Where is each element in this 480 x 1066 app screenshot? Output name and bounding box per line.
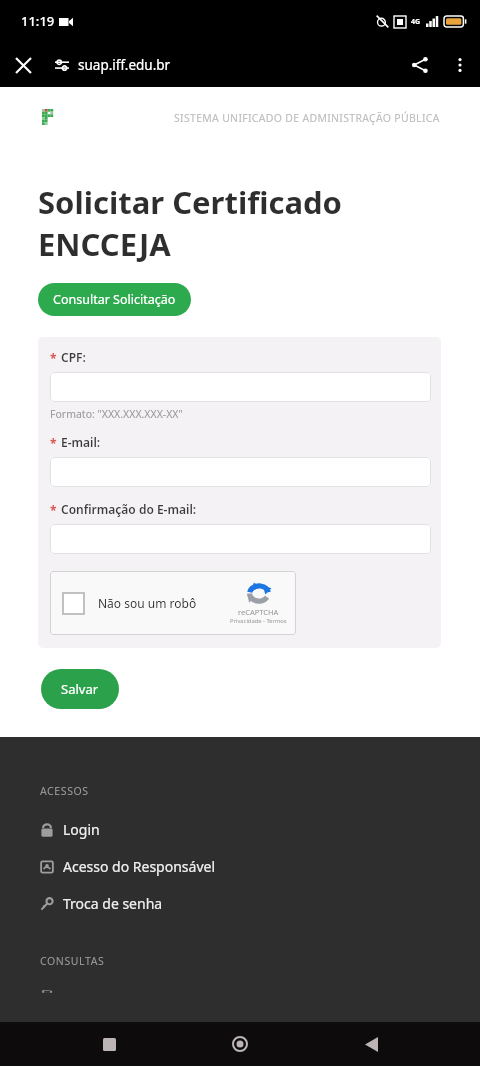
- staticText: Acesso do Responsável: [63, 857, 216, 876]
- staticText: Não sou um robô: [98, 595, 197, 611]
- staticText: *: [50, 435, 57, 451]
- button[interactable]: Não sou um robô: [50, 571, 296, 635]
- staticText: Troca de senha: [63, 894, 163, 913]
- button[interactable]: Recents: [87, 1022, 131, 1066]
- button[interactable]: Login: [0, 811, 480, 848]
- button[interactable]: [50, 457, 431, 487]
- staticText: Consultar Solicitação: [53, 291, 176, 308]
- staticText: 4G: [411, 17, 421, 27]
- staticText: 11:19: [21, 12, 55, 30]
- button[interactable]: More options: [440, 45, 480, 85]
- button[interactable]: Home: [218, 1022, 262, 1066]
- button[interactable]: Troca de senha: [0, 885, 480, 922]
- button[interactable]: Back: [349, 1022, 393, 1066]
- staticText: Solicitar Certificado: [38, 181, 342, 223]
- staticText: *: [50, 502, 57, 518]
- staticText: CPF:: [61, 349, 86, 365]
- button[interactable]: Acesso do Responsável: [0, 848, 480, 885]
- staticText: CONSULTAS: [40, 954, 105, 968]
- staticText: Salvar: [61, 680, 99, 698]
- button[interactable]: Page info: [46, 49, 78, 81]
- button[interactable]: Share: [400, 45, 440, 85]
- staticText: reCAPTCHA: [238, 607, 279, 617]
- button[interactable]: Consultar Solicitação: [38, 283, 191, 316]
- staticText: *: [50, 350, 57, 366]
- staticText: Formato: "XXX.XXX.XXX-XX": [50, 407, 183, 421]
- staticText: suap.iff.edu.br: [78, 56, 171, 74]
- staticText: Confirmação do E-mail:: [61, 501, 197, 517]
- button[interactable]: Processos Físicos: [0, 981, 480, 1002]
- button[interactable]: Close: [6, 48, 40, 82]
- staticText: SISTEMA UNIFICADO DE ADMINISTRAÇÃO PÚBLI…: [174, 111, 440, 125]
- button[interactable]: [50, 372, 431, 402]
- button[interactable]: [50, 524, 431, 554]
- staticText: Privacidade - Termos: [230, 617, 287, 625]
- button[interactable]: Salvar: [41, 669, 119, 709]
- staticText: ACESSOS: [40, 784, 89, 798]
- staticText: ENCCEJA: [38, 223, 171, 265]
- staticText: Login: [63, 820, 100, 839]
- staticText: E-mail:: [61, 434, 101, 450]
